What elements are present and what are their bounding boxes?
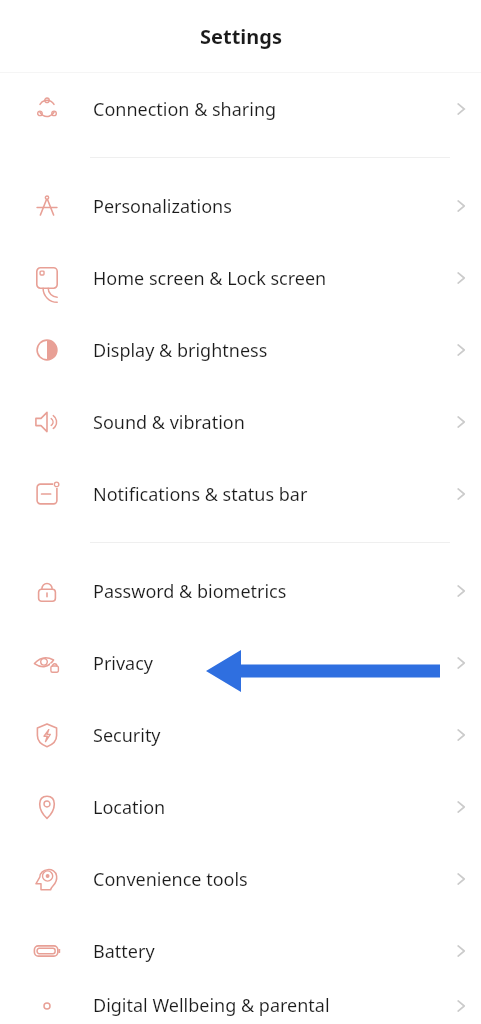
staticText: Sound & vibration (93, 410, 440, 435)
button[interactable]: Location (0, 771, 481, 843)
button[interactable]: Battery (0, 915, 481, 987)
staticText: Privacy (93, 651, 440, 676)
button[interactable]: Personalizations (0, 170, 481, 242)
staticText: Battery (93, 939, 440, 964)
staticText: Home screen & Lock screen (93, 266, 440, 291)
button[interactable]: Home screen & Lock screen (0, 242, 481, 314)
button[interactable]: Sound & vibration (0, 386, 481, 458)
button[interactable]: Digital Wellbeing & parental (0, 987, 481, 1024)
staticText: Password & biometrics (93, 579, 440, 604)
button[interactable]: Security (0, 699, 481, 771)
button[interactable]: Convenience tools (0, 843, 481, 915)
staticText: Personalizations (93, 194, 440, 219)
staticText: Convenience tools (93, 867, 440, 892)
staticText: Location (93, 795, 440, 820)
staticText: Settings (200, 23, 282, 50)
button[interactable]: Connection & sharing (0, 73, 481, 145)
staticText: Security (93, 723, 440, 748)
button[interactable]: Password & biometrics (0, 555, 481, 627)
staticText: Connection & sharing (93, 97, 440, 122)
staticText: Display & brightness (93, 338, 440, 363)
staticText: Digital Wellbeing & parental (93, 993, 440, 1018)
staticText: Notifications & status bar (93, 482, 440, 507)
button[interactable]: Notifications & status bar (0, 458, 481, 530)
button[interactable]: Privacy (0, 627, 481, 699)
button[interactable]: Display & brightness (0, 314, 481, 386)
